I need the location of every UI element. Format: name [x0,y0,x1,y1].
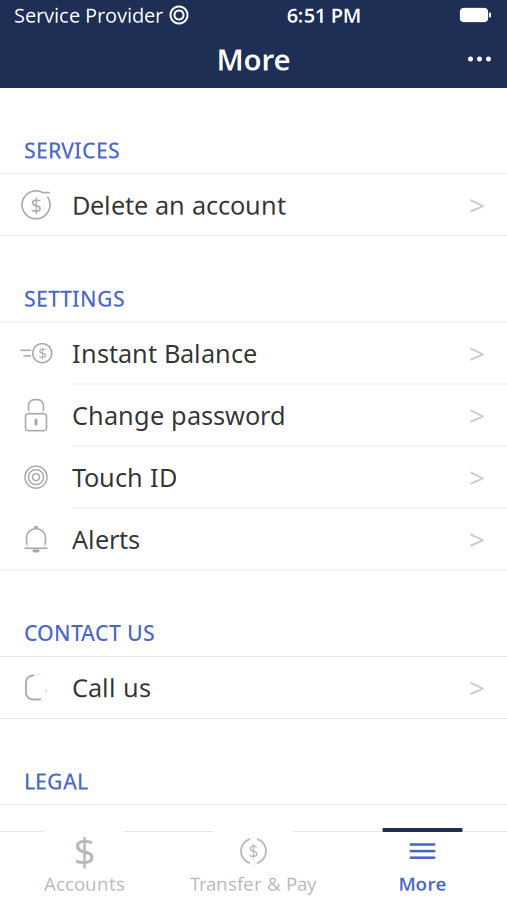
staticText: SETTINGS [24,284,125,313]
staticText: > [469,335,485,372]
staticText: CONTACT US [24,619,155,647]
staticText: > [469,397,485,434]
staticText: Call us [72,671,151,704]
button[interactable]: Alerts [0,509,507,571]
staticText: Accounts [44,871,125,896]
button[interactable]: $ [0,174,507,236]
button[interactable]: Call us [0,657,507,719]
staticText: $ [73,825,95,877]
staticText: More [398,871,446,896]
button[interactable]: More [338,828,507,900]
staticText: Touch ID [72,460,177,494]
button[interactable]: More options [452,40,507,77]
staticText: > [469,459,485,496]
staticText: > [469,521,485,558]
button[interactable]: Change password [0,385,507,447]
staticText: > [469,669,485,706]
staticText: 6:51 PM [287,2,362,28]
staticText: LEGAL [24,767,88,795]
staticText: $ [248,840,258,863]
staticText: Transfer & Pay [190,871,317,896]
button[interactable]: $ [0,828,169,900]
staticText: $ [30,192,41,218]
staticText: Delete an account [72,188,286,222]
button[interactable]: $ [169,828,338,900]
staticText: SERVICES [24,136,120,164]
staticText: > [469,186,485,223]
staticText: More [216,39,290,78]
staticText: Service Provider [14,2,163,28]
button[interactable]: Touch ID [0,447,507,509]
button[interactable]: $ [0,323,507,385]
staticText: Alerts [72,522,140,556]
staticText: $ [38,343,46,363]
staticText: Instant Balance [72,336,257,370]
staticText: Change password [72,398,286,432]
